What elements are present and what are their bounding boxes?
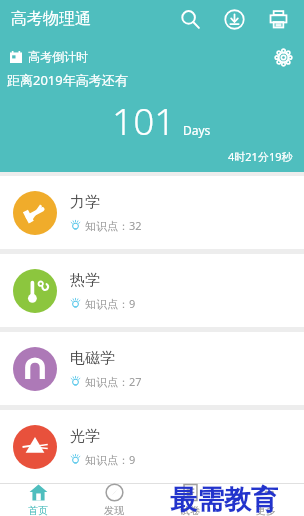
staticText: 高考倒计时 (28, 49, 88, 64)
staticText: 更多 (256, 504, 276, 516)
button[interactable]: 高考倒计时 (0, 38, 304, 172)
staticText: 发现 (104, 504, 124, 516)
staticText: 首页 (28, 504, 48, 516)
button[interactable]: 力学 (0, 176, 304, 249)
staticText: 电磁学 (70, 349, 115, 368)
button[interactable]: 热学 (0, 254, 304, 327)
staticText: 热学 (70, 271, 100, 290)
staticText: 知识点：27 (85, 374, 142, 389)
button[interactable]: 光学 (0, 410, 304, 483)
staticText: 知识点：9 (85, 296, 136, 311)
staticText: 知识点：9 (85, 452, 136, 467)
button[interactable]: Settings (268, 42, 298, 72)
button[interactable]: 发现 (76, 483, 152, 516)
staticText: 最需教育 (170, 483, 278, 516)
staticText: 4时21分19秒 (228, 149, 293, 164)
button[interactable]: 试卷 (152, 483, 228, 516)
button[interactable]: Search (168, 0, 212, 38)
staticText: Days (183, 122, 211, 138)
button[interactable]: Print (256, 0, 300, 38)
button[interactable]: 首页 (0, 483, 76, 516)
staticText: 101 (112, 95, 176, 145)
button[interactable]: 电磁学 (0, 332, 304, 405)
staticText: 距离2019年高考还有 (7, 71, 128, 89)
staticText: 力学 (70, 193, 100, 212)
button[interactable]: Download (212, 0, 256, 38)
button[interactable]: 更多 (228, 483, 304, 516)
staticText: 高考物理通 (11, 9, 91, 29)
staticText: 知识点：32 (85, 218, 142, 233)
staticText: 光学 (70, 427, 100, 446)
staticText: 试卷 (180, 504, 200, 516)
